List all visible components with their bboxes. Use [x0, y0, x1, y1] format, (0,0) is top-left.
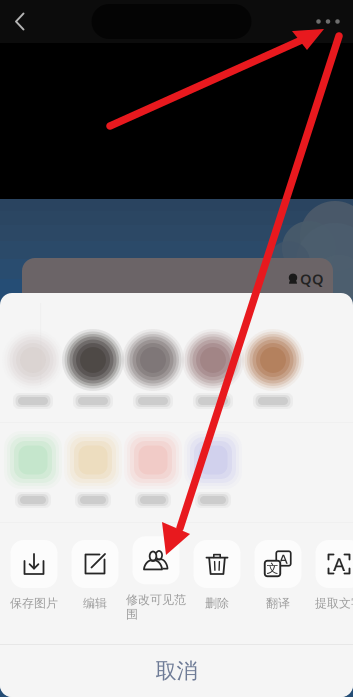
staticText: 翻译	[266, 596, 290, 611]
button[interactable]: 编辑	[71, 540, 118, 626]
staticText: 删除	[205, 596, 229, 611]
staticText: 保存图片	[10, 596, 58, 611]
button[interactable]: More options	[306, 4, 350, 38]
button[interactable]: 删除	[193, 540, 240, 626]
staticText: A	[333, 552, 345, 576]
button[interactable]: A	[315, 540, 353, 626]
button[interactable]: Back	[3, 4, 37, 38]
staticText: 取消	[155, 658, 197, 684]
button[interactable]: 保存图片	[10, 540, 57, 626]
staticText: 修改可见范围	[126, 592, 186, 622]
staticText: 编辑	[83, 596, 107, 611]
staticText: 文	[266, 561, 278, 576]
button[interactable]: 修改可见范围	[132, 540, 179, 626]
staticText: A	[279, 550, 288, 567]
button[interactable]: 取消	[0, 645, 353, 697]
staticText: QQ	[300, 269, 324, 288]
button[interactable]: A	[254, 540, 301, 626]
staticText: 提取文字	[315, 596, 353, 611]
